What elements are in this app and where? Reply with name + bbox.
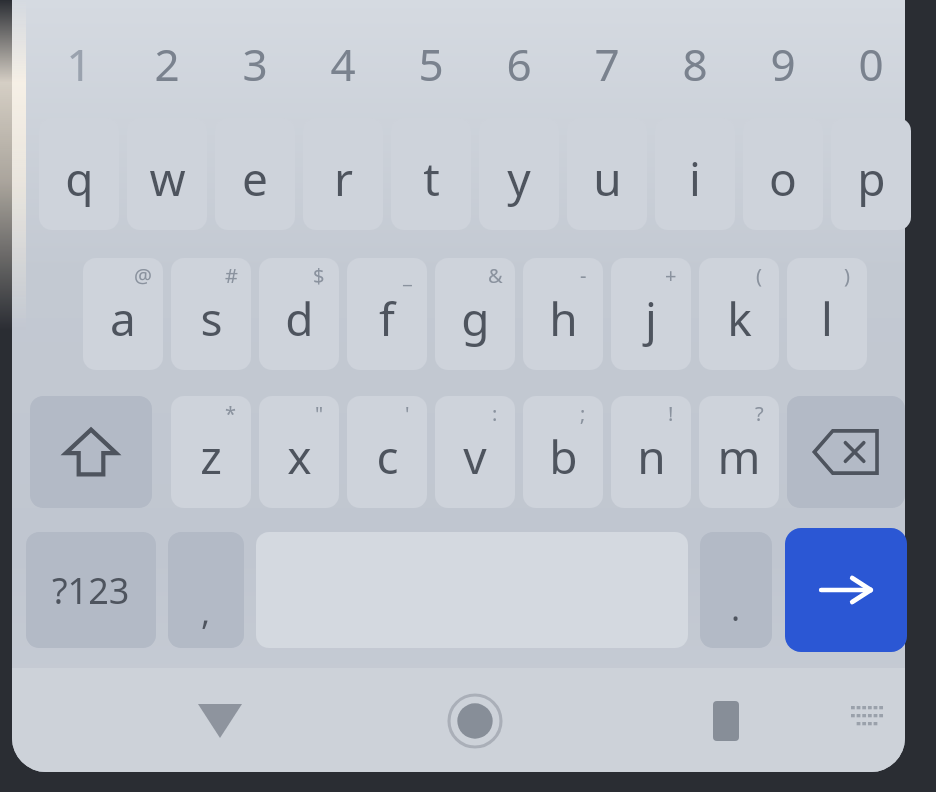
staticText: s (200, 287, 223, 350)
staticText: h (549, 287, 578, 350)
button[interactable]: u (567, 118, 647, 230)
staticText: ! (668, 400, 674, 427)
staticText: 9 (770, 34, 796, 94)
button[interactable]: Hide keyboard (178, 690, 262, 752)
button[interactable]: k (699, 258, 779, 370)
staticText: ? (755, 400, 764, 427)
button[interactable]: ?123 (26, 532, 156, 648)
button[interactable]: Recent apps (690, 688, 762, 754)
button[interactable]: g (435, 258, 515, 370)
button[interactable]: 4 (303, 18, 383, 110)
button[interactable]: Switch keyboard (838, 690, 898, 746)
staticText: z (200, 425, 222, 488)
staticText: " (315, 400, 324, 427)
staticText: k (727, 287, 752, 350)
button[interactable]: 3 (215, 18, 295, 110)
staticText: # (225, 262, 238, 289)
staticText: e (242, 147, 268, 210)
button[interactable]: y (479, 118, 559, 230)
button[interactable]: d (259, 258, 339, 370)
button[interactable]: 1 (39, 18, 119, 110)
staticText: @ (134, 262, 152, 289)
staticText: l (821, 287, 833, 350)
staticText: ; (580, 400, 586, 427)
staticText: ?123 (52, 566, 130, 615)
staticText: a (110, 287, 136, 350)
staticText: ) (844, 262, 850, 289)
button[interactable]: c (347, 396, 427, 508)
button[interactable]: a (83, 258, 163, 370)
staticText: , (201, 589, 211, 635)
button[interactable]: q (39, 118, 119, 230)
staticText: $ (313, 262, 325, 289)
staticText: _ (403, 262, 412, 289)
staticText: 4 (330, 34, 356, 94)
staticText: t (423, 147, 440, 210)
button[interactable]: 5 (391, 18, 471, 110)
button[interactable]: Shift (30, 396, 152, 508)
button[interactable]: Home (432, 686, 518, 756)
button[interactable]: p (831, 118, 911, 230)
staticText: 1 (66, 34, 92, 94)
button[interactable]: t (391, 118, 471, 230)
staticText: r (334, 147, 353, 210)
button[interactable]: v (435, 396, 515, 508)
staticText: m (717, 425, 761, 488)
staticText: q (65, 147, 94, 210)
button[interactable]: 0 (831, 18, 911, 110)
staticText: 5 (418, 34, 444, 94)
staticText: 6 (506, 34, 532, 94)
staticText: ( (756, 262, 762, 289)
button[interactable]: 2 (127, 18, 207, 110)
staticText: g (461, 287, 490, 350)
button[interactable]: w (127, 118, 207, 230)
staticText: y (507, 147, 531, 210)
button[interactable]: j (611, 258, 691, 370)
staticText: j (645, 287, 657, 350)
button[interactable]: r (303, 118, 383, 230)
staticText: ' (405, 400, 410, 427)
button[interactable]: f (347, 258, 427, 370)
button[interactable]: 7 (567, 18, 647, 110)
button[interactable]: Backspace (787, 396, 905, 508)
staticText: 3 (242, 34, 268, 94)
button[interactable]: o (743, 118, 823, 230)
button[interactable]: x (259, 396, 339, 508)
staticText: + (665, 262, 677, 289)
button[interactable]: , (168, 532, 244, 648)
button[interactable]: 6 (479, 18, 559, 110)
staticText: v (463, 425, 487, 488)
button[interactable]: z (171, 396, 251, 508)
staticText: d (285, 287, 314, 350)
staticText: 2 (154, 34, 180, 94)
staticText: : (492, 400, 498, 427)
staticText: f (379, 287, 395, 350)
staticText: 7 (594, 34, 620, 94)
staticText: . (731, 585, 741, 631)
staticText: n (637, 425, 666, 488)
button[interactable]: b (523, 396, 603, 508)
staticText: 0 (858, 34, 884, 94)
button[interactable]: . (700, 532, 772, 648)
button[interactable]: n (611, 396, 691, 508)
button[interactable]: m (699, 396, 779, 508)
button[interactable]: s (171, 258, 251, 370)
staticText: * (225, 400, 237, 427)
button[interactable]: h (523, 258, 603, 370)
staticText: 8 (682, 34, 708, 94)
button[interactable]: Enter (785, 528, 907, 652)
button[interactable]: 9 (743, 18, 823, 110)
button[interactable]: l (787, 258, 867, 370)
button[interactable]: e (215, 118, 295, 230)
staticText: & (488, 262, 503, 289)
button[interactable]: 8 (655, 18, 735, 110)
staticText: c (376, 425, 399, 488)
staticText: i (689, 147, 701, 210)
staticText: x (287, 425, 312, 488)
button[interactable]: i (655, 118, 735, 230)
staticText: p (857, 147, 886, 210)
staticText: b (549, 425, 578, 488)
staticText: u (593, 147, 622, 210)
staticText: w (149, 147, 186, 210)
